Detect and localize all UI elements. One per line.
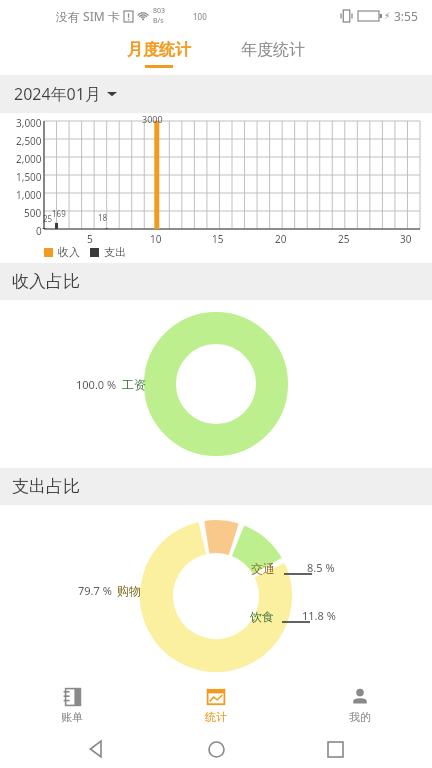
staticText: 2,500 [16, 134, 42, 148]
staticText: 100 [193, 11, 207, 22]
staticText: 支出占比 [12, 476, 80, 497]
staticText: 3,000 [16, 116, 42, 130]
staticText: 2024年01月 [14, 83, 101, 105]
button[interactable]: Home [194, 730, 238, 768]
staticText: 11.8 % [302, 608, 336, 623]
staticText: 收入 [58, 245, 80, 259]
staticText: 10 [150, 232, 162, 246]
staticText: 25 [43, 213, 53, 224]
staticText: 15 [212, 232, 224, 246]
staticText: 20 [275, 232, 287, 246]
staticText: 1,500 [16, 170, 42, 184]
button[interactable]: 年度统计 [225, 44, 321, 64]
staticText: 购物 [117, 583, 141, 598]
button[interactable]: 2024年01月 [0, 75, 432, 113]
staticText: 100.0 % [76, 377, 117, 392]
staticText: 25 [338, 232, 350, 246]
staticText: 月度统计 [127, 40, 191, 60]
staticText: 支出 [104, 245, 126, 259]
staticText: 0 [36, 224, 42, 238]
button[interactable]: 账单 [0, 680, 144, 730]
other: 统计 [206, 687, 226, 707]
button[interactable]: 我的 [288, 680, 432, 730]
staticText: 账单 [61, 710, 83, 724]
staticText: 8.5 % [307, 560, 335, 575]
staticText: 30 [400, 232, 412, 246]
staticText: 1,000 [16, 188, 42, 202]
staticText: 18 [98, 212, 108, 223]
staticText: 我的 [349, 710, 371, 724]
button[interactable]: Recents [313, 730, 357, 768]
staticText: 交通 [251, 561, 275, 576]
staticText: 收入占比 [12, 271, 80, 292]
staticText: 年度统计 [241, 40, 305, 60]
staticText: ⚡ [384, 11, 391, 21]
staticText: 2,000 [16, 152, 42, 166]
staticText: 803 [153, 6, 166, 16]
staticText: B/s [153, 16, 164, 26]
staticText: 工资 [122, 377, 146, 392]
staticText: 饮食 [250, 609, 274, 624]
other: 账单 [62, 687, 82, 707]
button[interactable]: 月度统计 [111, 40, 207, 68]
button[interactable]: 统计 [144, 680, 288, 730]
staticText: 79.7 % [78, 583, 112, 598]
staticText: 统计 [205, 710, 227, 724]
other: 我的 [350, 687, 370, 707]
staticText: 5 [87, 232, 93, 246]
staticText: 3:55 [394, 8, 418, 24]
staticText: 500 [24, 206, 42, 220]
staticText: 没有 SIM 卡 [56, 8, 120, 24]
staticText: 3000 [142, 113, 163, 125]
button[interactable]: Back [75, 730, 119, 768]
staticText: 169 [52, 208, 66, 219]
